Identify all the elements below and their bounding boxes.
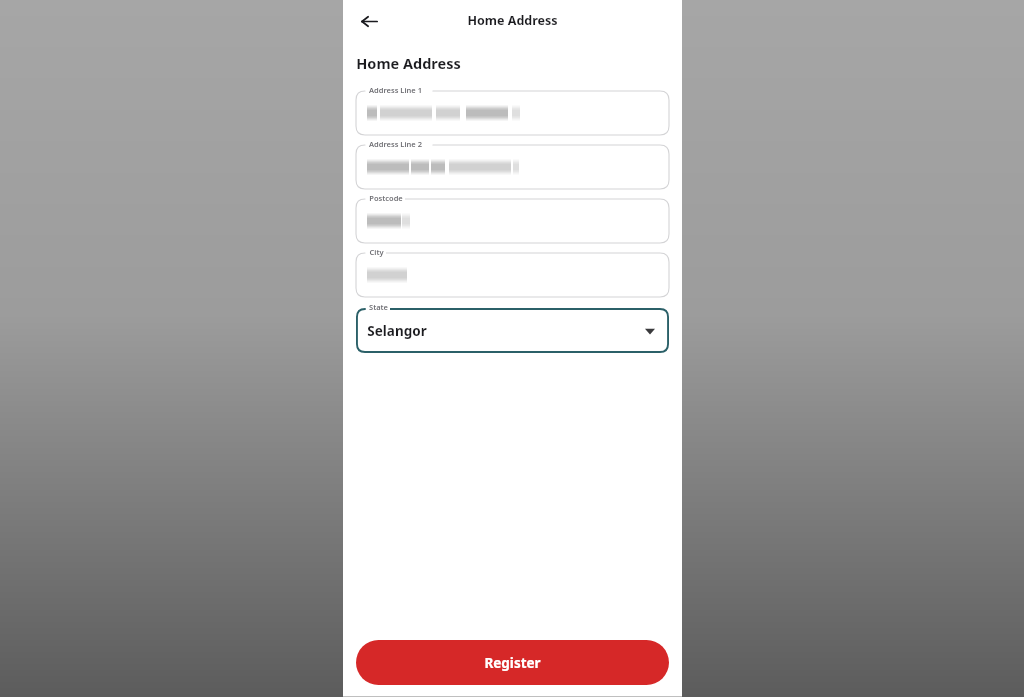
button[interactable]: Address Line 1 xyxy=(356,91,669,135)
other: Open state list xyxy=(645,326,655,336)
staticText: Selangor xyxy=(367,322,427,340)
other: Back xyxy=(361,13,378,30)
staticText: City xyxy=(369,247,384,257)
button[interactable]: Back xyxy=(352,4,386,38)
staticText: Address Line 1 xyxy=(369,85,422,95)
staticText: State xyxy=(369,302,388,312)
button[interactable]: Address Line 2 xyxy=(356,145,669,189)
button[interactable]: City xyxy=(356,253,669,297)
button[interactable]: Postcode xyxy=(356,199,669,243)
staticText: Home Address xyxy=(467,12,558,29)
staticText: Postcode xyxy=(369,193,403,203)
button[interactable]: State dropdown xyxy=(356,308,669,353)
staticText: Register xyxy=(484,654,541,672)
staticText: Address Line 2 xyxy=(369,139,422,149)
button[interactable]: Register xyxy=(356,640,669,685)
staticText: Home Address xyxy=(356,53,461,73)
